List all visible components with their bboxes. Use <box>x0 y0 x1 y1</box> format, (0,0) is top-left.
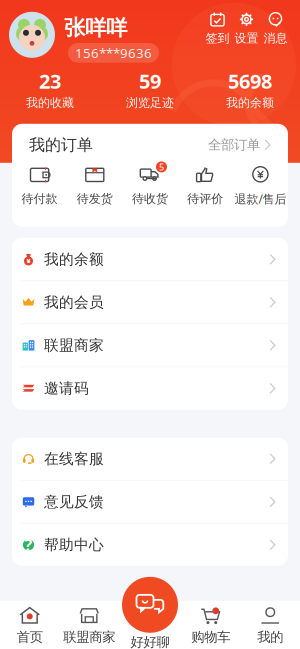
staticText: 我的订单 <box>29 135 93 155</box>
staticText: 联盟商家 <box>63 629 115 645</box>
staticText: 购物车 <box>191 629 230 645</box>
button[interactable]: 设置 <box>232 12 261 45</box>
button[interactable]: 消息 <box>261 12 290 45</box>
staticText: ? <box>24 534 32 555</box>
button[interactable]: 我的会员 <box>12 281 288 324</box>
button[interactable]: 待评价 <box>178 166 233 206</box>
button[interactable]: 在线客服 <box>12 438 288 481</box>
staticText: 联盟商家 <box>44 336 104 354</box>
button[interactable]: ? <box>12 524 288 566</box>
staticText: 首页 <box>17 629 43 645</box>
staticText: 23 <box>39 68 61 94</box>
staticText: 退款/售后 <box>234 191 286 207</box>
staticText: 5698 <box>228 68 272 94</box>
staticText: 我的余额 <box>44 250 104 268</box>
button[interactable]: 全部订单 <box>208 137 271 153</box>
button[interactable]: 好好聊 <box>110 577 190 649</box>
button[interactable]: 联盟商家 <box>59 601 119 649</box>
button[interactable]: 我的 <box>240 601 300 649</box>
staticText: 全部订单 <box>208 137 260 153</box>
staticText: 张咩咩 <box>64 15 127 41</box>
button[interactable]: 邀请码 <box>12 367 288 409</box>
button[interactable]: 退款/售后 <box>233 166 288 207</box>
staticText: 待收货 <box>132 191 168 206</box>
button[interactable]: 首页 <box>0 601 59 649</box>
staticText: 签到 <box>205 31 229 45</box>
staticText: 待付款 <box>22 191 58 206</box>
button[interactable]: 签到 <box>203 12 232 45</box>
staticText: 意见反馈 <box>44 493 104 511</box>
staticText: 我的余额 <box>226 95 274 110</box>
button[interactable]: 意见反馈 <box>12 481 288 524</box>
staticText: 我的 <box>257 629 283 645</box>
staticText: 浏览足迹 <box>126 95 174 110</box>
staticText: 待发货 <box>77 191 113 206</box>
button[interactable]: 我的余额 <box>12 238 288 281</box>
staticText: 待评价 <box>187 191 223 206</box>
button[interactable]: 待发货 <box>67 166 122 206</box>
staticText: 我的会员 <box>44 293 104 311</box>
button[interactable]: 联盟商家 <box>12 324 288 367</box>
button[interactable]: 待付款 <box>12 166 67 206</box>
staticText: 消息 <box>263 31 287 45</box>
button[interactable]: 购物车 <box>181 601 240 649</box>
button[interactable]: 5 <box>122 166 178 206</box>
staticText: 邀请码 <box>44 379 89 397</box>
staticText: 设置 <box>234 31 258 45</box>
staticText: 在线客服 <box>44 450 104 468</box>
staticText: 156***9636 <box>75 44 152 62</box>
staticText: 我的收藏 <box>26 95 74 110</box>
staticText: 好好聊 <box>130 634 169 649</box>
staticText: 帮助中心 <box>44 536 104 554</box>
staticText: 5 <box>159 161 164 173</box>
staticText: 59 <box>139 68 161 94</box>
